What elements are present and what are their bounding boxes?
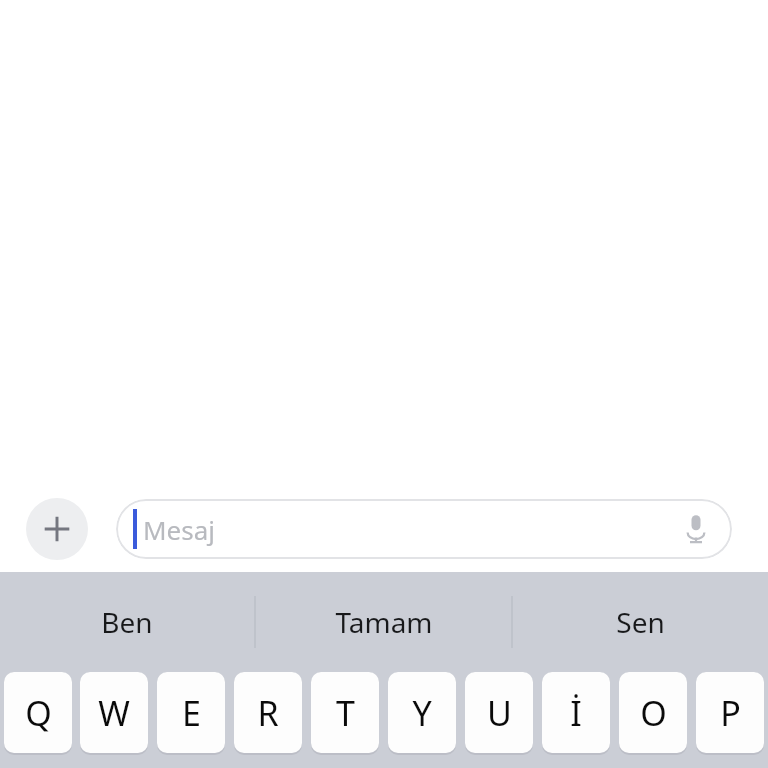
staticText: Tamam <box>335 603 433 641</box>
button[interactable]: P <box>696 672 764 753</box>
staticText: Y <box>412 690 432 736</box>
staticText: T <box>336 690 355 736</box>
button[interactable]: Y <box>388 672 456 753</box>
staticText: U <box>487 690 512 736</box>
button[interactable]: E <box>157 672 225 753</box>
button[interactable]: Add attachment <box>26 498 88 560</box>
button[interactable]: R <box>234 672 302 753</box>
staticText: Ben <box>101 603 153 641</box>
button[interactable]: O <box>619 672 687 753</box>
button[interactable]: Tamam <box>256 572 511 672</box>
staticText: Q <box>25 690 52 736</box>
button[interactable]: Mesaj <box>116 499 732 559</box>
staticText: İ <box>570 690 582 736</box>
button[interactable]: Ben <box>0 572 254 672</box>
staticText: Mesaj <box>143 512 215 547</box>
button[interactable]: W <box>80 672 148 753</box>
staticText: E <box>182 690 201 736</box>
button[interactable]: Voice input <box>674 507 718 551</box>
staticText: W <box>98 690 130 736</box>
button[interactable]: U <box>465 672 533 753</box>
staticText: O <box>640 690 667 736</box>
staticText: R <box>257 690 279 736</box>
button[interactable]: Sen <box>513 572 768 672</box>
staticText: Sen <box>616 603 665 641</box>
staticText: P <box>720 690 741 736</box>
button[interactable]: İ <box>542 672 610 753</box>
button[interactable]: T <box>311 672 379 753</box>
button[interactable]: Q <box>4 672 72 753</box>
